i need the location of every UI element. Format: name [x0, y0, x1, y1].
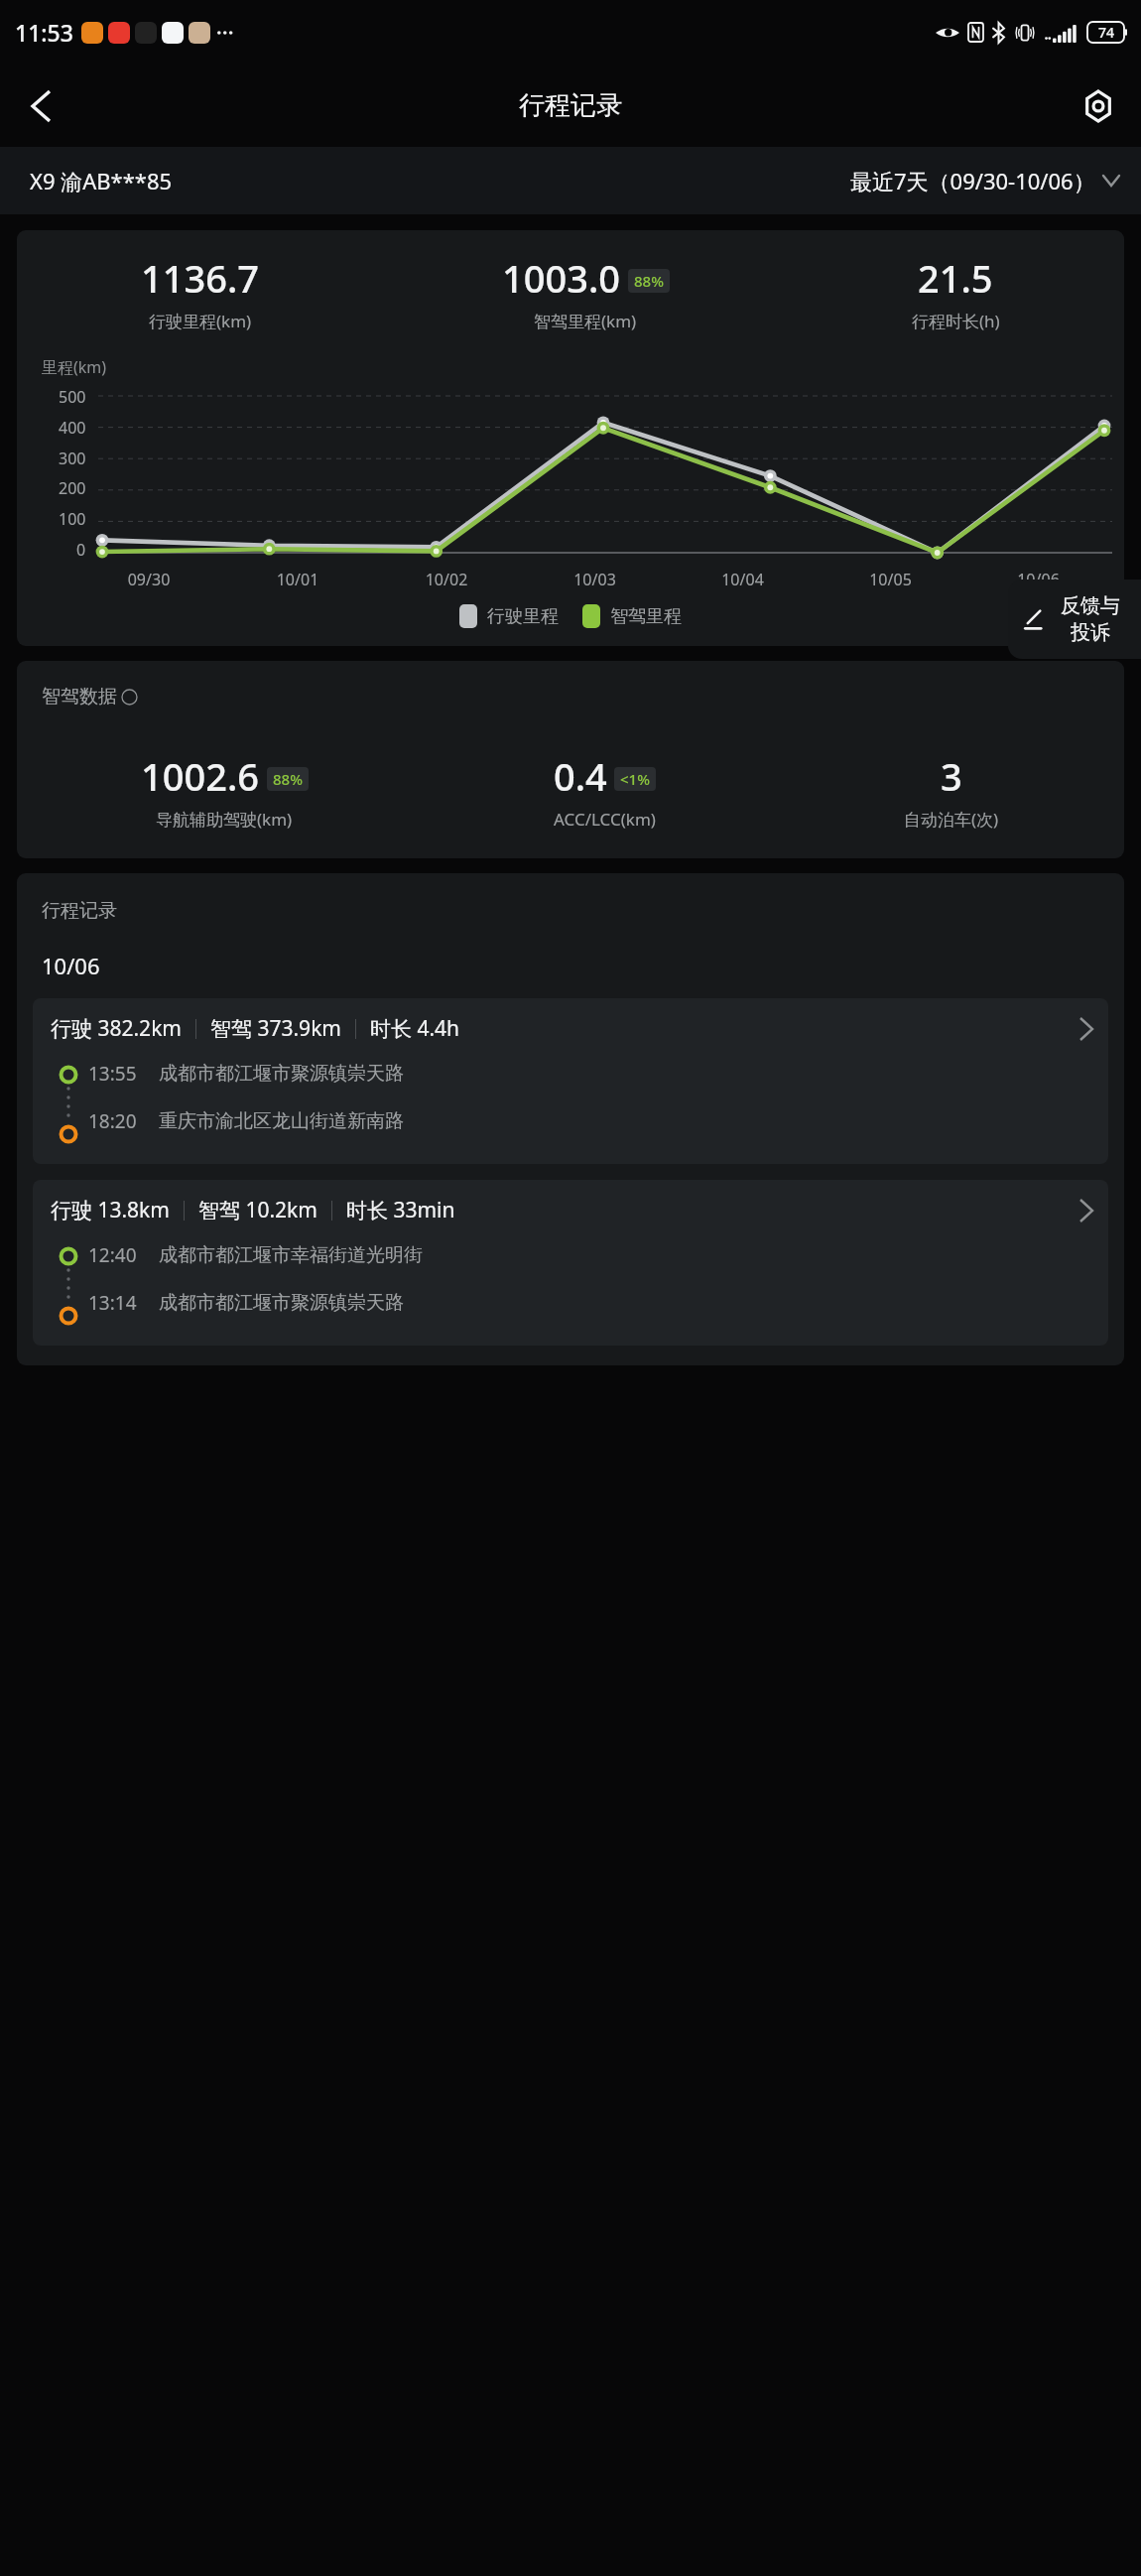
staticText: 反馈与投诉	[1054, 593, 1127, 645]
staticText: 10/01	[223, 569, 372, 590]
button[interactable]: 行驶 13.8km	[33, 1180, 1108, 1346]
staticText: 09/30	[74, 569, 223, 590]
staticText: 100	[59, 508, 86, 530]
staticText: 400	[59, 417, 86, 439]
staticText: 智驾 10.2km	[198, 1196, 317, 1224]
staticText: 12:40	[88, 1242, 137, 1268]
staticText: 88%	[634, 271, 664, 291]
staticText: 行程记录	[42, 899, 117, 923]
staticText: 行程时长(h)	[912, 310, 1000, 332]
staticText: 10/02	[372, 569, 521, 590]
staticText: 3	[941, 750, 962, 802]
staticText: 里程(km)	[42, 356, 107, 378]
staticText: 行程记录	[519, 89, 622, 122]
staticText: 导航辅助驾驶(km)	[156, 808, 293, 831]
staticText: 200	[59, 477, 86, 499]
staticText: 时长 4.4h	[370, 1014, 460, 1043]
staticText: 300	[59, 448, 86, 469]
staticText: 行驶里程	[487, 605, 559, 628]
staticText: 行驶 382.2km	[51, 1014, 182, 1043]
staticText: 成都市都江堰市聚源镇崇天路	[159, 1291, 404, 1315]
staticText: X9 渝AB***85	[30, 166, 173, 195]
staticText: 时长 33min	[346, 1196, 455, 1224]
staticText: 11:53	[15, 17, 73, 48]
staticText: 0	[76, 539, 86, 561]
staticText: 10/04	[669, 569, 817, 590]
staticText: 21.5	[918, 252, 993, 304]
staticText: 10/05	[817, 569, 964, 590]
staticText: 最近7天（09/30-10/06）	[850, 166, 1095, 195]
staticText: 88%	[273, 769, 303, 789]
staticText: 1136.7	[141, 252, 260, 304]
staticText: 智驾数据	[42, 685, 117, 708]
staticText: 成都市都江堰市聚源镇崇天路	[159, 1062, 404, 1086]
button[interactable]: 智驾数据	[42, 685, 138, 708]
staticText: 行驶里程(km)	[149, 310, 252, 332]
staticText: 18:20	[88, 1108, 137, 1134]
staticText: 10/06	[42, 951, 100, 980]
staticText: 74	[1098, 23, 1115, 42]
staticText: 行驶 13.8km	[51, 1196, 170, 1224]
button[interactable]: Settings	[1066, 73, 1131, 139]
staticText: 智驾里程(km)	[534, 310, 637, 332]
staticText: 10/06	[964, 569, 1112, 590]
staticText: <1%	[620, 769, 650, 789]
staticText: 1003.0	[502, 252, 621, 304]
staticText: 智驾 373.9km	[210, 1014, 341, 1043]
staticText: 成都市都江堰市幸福街道光明街	[159, 1243, 423, 1267]
staticText: 500	[59, 386, 86, 408]
staticText: 重庆市渝北区龙山街道新南路	[159, 1109, 404, 1133]
staticText: 13:14	[88, 1290, 137, 1316]
staticText: 13:55	[88, 1061, 137, 1087]
button[interactable]: 行驶 382.2km	[33, 998, 1108, 1164]
staticText: 0.4	[554, 750, 607, 802]
staticText: 自动泊车(次)	[904, 808, 999, 831]
staticText: 10/03	[521, 569, 669, 590]
staticText: 1002.6	[141, 750, 260, 802]
button[interactable]: Back	[6, 71, 75, 141]
button[interactable]: 反馈与投诉	[1008, 580, 1141, 659]
staticText: ACC/LCC(km)	[554, 808, 656, 831]
button[interactable]: X9 渝AB***85	[30, 166, 173, 195]
button[interactable]: 最近7天（09/30-10/06）	[850, 166, 1119, 195]
staticText: 智驾里程	[610, 605, 682, 628]
